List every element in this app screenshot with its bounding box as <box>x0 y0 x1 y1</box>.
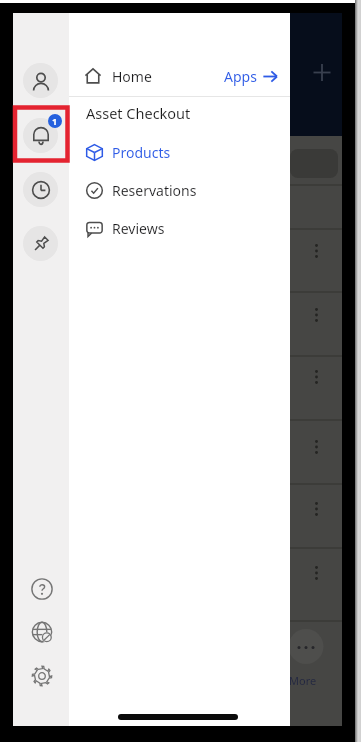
staticText: Reservations <box>112 181 197 200</box>
button[interactable] <box>31 578 53 600</box>
staticText: More <box>289 673 317 688</box>
button[interactable]: Reviews <box>69 213 290 243</box>
staticText: Reviews <box>112 219 165 238</box>
button[interactable] <box>31 665 53 687</box>
button[interactable] <box>23 172 58 207</box>
button[interactable]: Reservations <box>69 175 290 205</box>
staticText: Asset Checkout <box>86 103 191 123</box>
staticText: 1 <box>52 115 58 127</box>
staticText: Products <box>112 143 171 162</box>
staticText: Apps <box>224 67 257 86</box>
button[interactable] <box>23 63 58 98</box>
button[interactable] <box>23 118 58 153</box>
button[interactable]: Apps <box>224 62 290 90</box>
button[interactable]: Home <box>69 62 290 90</box>
button[interactable]: Products <box>69 137 290 167</box>
staticText: Home <box>112 67 152 86</box>
button[interactable] <box>23 226 58 261</box>
button[interactable] <box>31 621 53 643</box>
